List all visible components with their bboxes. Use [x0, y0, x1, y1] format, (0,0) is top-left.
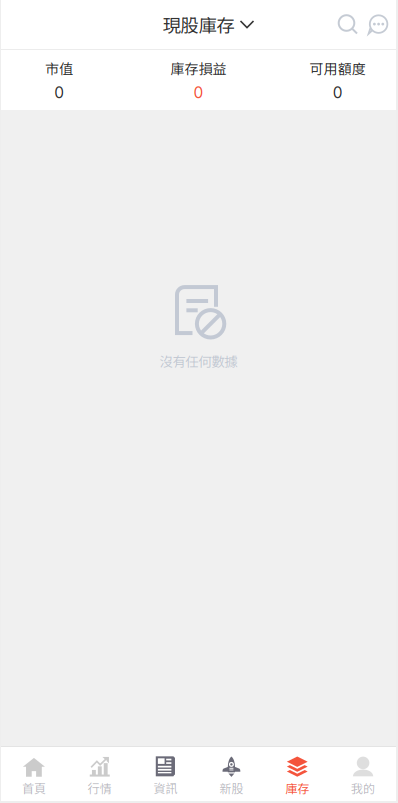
button[interactable]: 行情: [67, 747, 133, 801]
button[interactable]: 庫存: [264, 747, 330, 801]
staticText: 行情: [88, 779, 112, 797]
button[interactable]: 首頁: [1, 747, 67, 801]
staticText: 新股: [219, 779, 243, 797]
staticText: 0: [193, 83, 203, 102]
button[interactable]: 現股庫存: [162, 11, 254, 38]
button[interactable]: Messages: [363, 9, 393, 39]
staticText: 我的: [351, 779, 375, 797]
staticText: 0: [333, 83, 343, 102]
staticText: 沒有任何數據: [159, 351, 237, 371]
button[interactable]: 我的: [330, 747, 396, 801]
staticText: 現股庫存: [162, 11, 234, 38]
staticText: 0: [54, 83, 64, 102]
staticText: 市值: [45, 58, 73, 78]
staticText: 庫存: [285, 779, 309, 797]
staticText: 資訊: [154, 779, 178, 797]
staticText: 可用額度: [310, 58, 366, 78]
staticText: 首頁: [22, 779, 46, 797]
button[interactable]: 新股: [198, 747, 264, 801]
staticText: 庫存損益: [170, 58, 226, 78]
button[interactable]: 資訊: [133, 747, 198, 801]
button[interactable]: Search: [333, 9, 363, 39]
